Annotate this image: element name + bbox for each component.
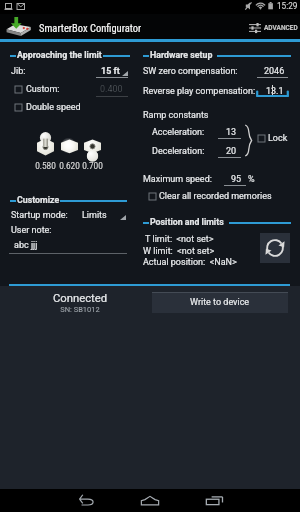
staticText: Maximum speed: — [143, 174, 212, 185]
staticText: Limits — [82, 210, 107, 221]
staticText: ADVANCED — [264, 24, 298, 32]
staticText: abc jjj — [14, 240, 38, 251]
staticText: Startup mode: — [11, 210, 68, 221]
staticText: Clear all recorded memories — [159, 191, 272, 202]
staticText: Jib: — [11, 66, 26, 77]
staticText: Reverse play compensation: — [143, 86, 256, 97]
staticText: 15:29 — [277, 1, 298, 11]
button[interactable]: ADVANCED — [249, 14, 298, 42]
staticText: 2046 — [264, 66, 285, 77]
staticText: % — [248, 174, 255, 185]
staticText: 0.620 — [55, 161, 84, 171]
staticText: 95 — [231, 174, 242, 185]
button[interactable]: 0.700 — [84, 132, 101, 161]
button[interactable]: Checkbox — [15, 104, 22, 111]
staticText: Actual position: <NaN> — [143, 257, 237, 268]
staticText: Custom: — [26, 84, 60, 95]
button[interactable]: Write to device — [152, 292, 288, 313]
button[interactable]: 0.620 — [61, 132, 78, 161]
button[interactable]: Checkbox — [258, 135, 265, 142]
staticText: 13.1 — [266, 86, 284, 97]
button[interactable]: Checkbox — [15, 86, 22, 93]
button[interactable]: Back — [62, 489, 110, 512]
staticText: Deceleration: — [152, 146, 205, 157]
staticText: Acceleration: — [152, 127, 205, 138]
button[interactable]: 0.580 — [37, 132, 54, 161]
staticText: Double speed — [26, 102, 81, 113]
staticText: Approaching the limit — [17, 50, 102, 60]
staticText: 0.400 — [100, 84, 123, 95]
staticText: SN: SB1012 — [34, 305, 126, 314]
button[interactable]: Checkbox — [149, 193, 156, 200]
staticText: SmarterBox Configurator — [39, 22, 142, 34]
button[interactable]: Home — [126, 489, 174, 512]
staticText: W limit: <not set> — [143, 246, 215, 257]
staticText: 20 — [226, 146, 237, 157]
staticText: 13 — [226, 127, 237, 138]
staticText: 0.700 — [78, 161, 107, 171]
staticText: Customize — [17, 195, 60, 205]
staticText: SW zero compensation: — [143, 66, 238, 77]
staticText: 0.580 — [31, 161, 60, 171]
staticText: Position and limits — [150, 217, 224, 227]
staticText: Ramp constants — [143, 110, 209, 121]
staticText: Write to device — [190, 297, 250, 308]
button[interactable]: Refresh — [260, 233, 290, 263]
button[interactable]: Recents — [190, 489, 238, 512]
staticText: User note: — [11, 225, 52, 236]
staticText: T limit: <not set> — [143, 234, 214, 245]
staticText: 15 ft — [101, 66, 120, 77]
staticText: Lock — [268, 133, 288, 144]
staticText: Hardware setup — [150, 50, 213, 60]
staticText: Connected — [34, 292, 126, 305]
